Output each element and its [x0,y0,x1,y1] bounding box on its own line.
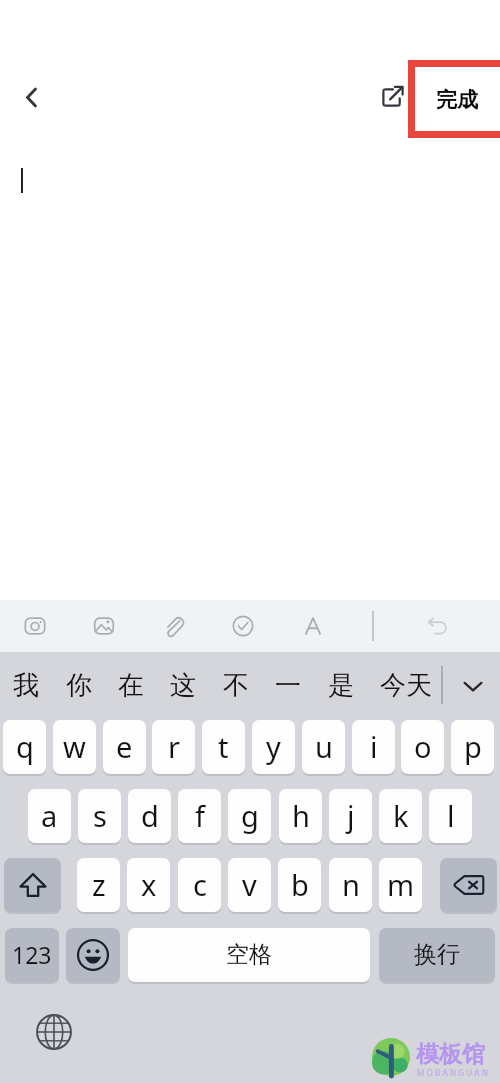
button[interactable]: 不 [210,652,262,719]
staticText: a [41,796,58,835]
staticText: 今天 [380,669,432,702]
staticText: 空格 [226,940,272,969]
staticText: 不 [223,669,249,702]
button[interactable]: e [103,720,146,774]
button[interactable]: 空格 [128,928,370,982]
staticText: r [168,727,180,766]
staticText: q [16,727,34,766]
button[interactable]: b [278,858,321,912]
staticText: j [347,796,355,835]
button[interactable]: k [379,789,422,843]
button[interactable]: Switch language [32,1010,76,1054]
button[interactable]: 这 [157,652,209,719]
button[interactable]: a [28,789,71,843]
staticText: y [266,727,281,766]
staticText: 这 [170,669,196,702]
staticText: 换行 [414,940,460,969]
button[interactable]: f [178,789,221,843]
button[interactable]: Format text [287,600,339,652]
staticText: 是 [328,669,354,702]
button[interactable]: Shift [4,858,61,912]
button[interactable]: Back [6,73,54,121]
button[interactable]: Expand candidates [448,652,498,719]
staticText: v [242,865,257,904]
staticText: e [116,727,133,766]
staticText: u [315,727,333,766]
button[interactable]: Attachment [148,600,200,652]
staticText: t [218,727,229,766]
staticText: m [387,865,415,904]
button[interactable]: Image [78,600,130,652]
button[interactable]: r [152,720,195,774]
button[interactable]: g [228,789,271,843]
staticText: 模板馆 [416,1040,485,1069]
staticText: c [193,865,207,904]
button[interactable]: 换行 [379,928,495,982]
staticText: b [291,865,309,904]
staticText: 你 [66,669,92,702]
button[interactable]: c [178,858,221,912]
button[interactable]: q [3,720,46,774]
staticText: 我 [13,669,39,702]
button[interactable]: Share [372,75,414,117]
button[interactable]: 你 [53,652,105,719]
button[interactable]: i [352,720,395,774]
staticText: MOBANGUAN [417,1067,491,1078]
staticText: 一 [275,669,301,702]
staticText: f [195,796,205,835]
button[interactable]: Camera [9,600,61,652]
button[interactable]: v [228,858,271,912]
staticText: 在 [118,669,144,702]
staticText: h [292,796,310,835]
button[interactable]: 在 [105,652,157,719]
staticText: x [141,865,157,904]
staticText: z [92,865,106,904]
button[interactable]: 我 [0,652,52,719]
button[interactable]: Todo [217,600,269,652]
button[interactable]: 是 [315,652,367,719]
button[interactable]: l [429,789,472,843]
button[interactable]: Undo [411,600,463,652]
staticText: l [447,796,455,835]
staticText: g [241,796,259,835]
button[interactable]: p [451,720,494,774]
staticText: s [93,796,107,835]
button[interactable]: 今天 [378,652,434,719]
staticText: p [464,727,482,766]
button[interactable]: w [53,720,96,774]
staticText: w [63,727,86,766]
button[interactable]: 完成 [408,60,500,138]
staticText: 123 [12,939,52,970]
button[interactable]: Backspace [440,858,497,912]
button[interactable]: o [401,720,444,774]
staticText: i [370,727,378,766]
button[interactable]: y [252,720,295,774]
button[interactable]: 123 [5,928,59,982]
button[interactable]: s [78,789,121,843]
staticText: d [141,796,159,835]
button[interactable]: j [329,789,372,843]
button[interactable]: d [128,789,171,843]
staticText: n [342,865,360,904]
button[interactable]: x [127,858,170,912]
staticText: k [393,796,409,835]
button[interactable]: t [202,720,245,774]
button[interactable]: n [329,858,372,912]
staticText: 完成 [436,87,478,113]
button[interactable]: h [279,789,322,843]
button[interactable]: z [77,858,120,912]
button[interactable]: u [302,720,345,774]
button[interactable]: Emoji [66,928,120,982]
button[interactable]: 一 [262,652,314,719]
staticText: o [414,727,432,766]
button[interactable]: m [379,858,422,912]
